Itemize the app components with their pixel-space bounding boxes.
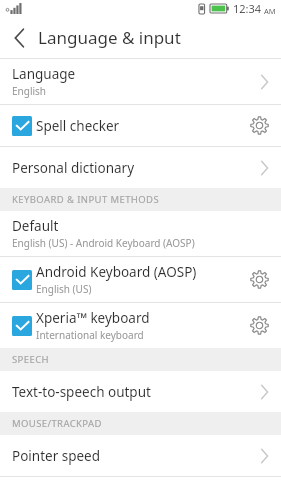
staticText: MOUSE/TRACKPAD xyxy=(12,417,102,430)
button[interactable]: Navigate up xyxy=(0,17,38,58)
staticText: Android Keyboard (AOSP) xyxy=(36,263,197,281)
button[interactable]: Personal dictionary xyxy=(0,147,281,188)
button[interactable]: Language xyxy=(0,59,281,104)
button[interactable]: Xperia keyboard settings xyxy=(237,303,281,348)
staticText: Spell checker xyxy=(36,117,120,135)
staticText: Xperia™ keyboard xyxy=(36,309,150,327)
button[interactable]: Pointer speed xyxy=(0,435,281,476)
staticText: SPEECH xyxy=(12,353,49,366)
staticText: KEYBOARD & INPUT METHODS xyxy=(12,193,160,206)
staticText: Language & input xyxy=(38,26,181,49)
button[interactable]: Default xyxy=(0,211,281,256)
staticText: 12:34 xyxy=(233,1,262,16)
staticText: International keyboard xyxy=(36,328,144,342)
staticText: Pointer speed xyxy=(12,447,101,465)
staticText: English xyxy=(12,84,47,98)
button[interactable]: Text-to-speech output xyxy=(0,371,281,412)
button[interactable]: Android Keyboard (AOSP) xyxy=(0,263,237,296)
staticText: AM xyxy=(264,6,276,16)
staticText: Language xyxy=(12,65,76,83)
staticText: Personal dictionary xyxy=(12,159,135,177)
button[interactable]: Xperia™ keyboard xyxy=(0,309,237,342)
staticText: Text-to-speech output xyxy=(12,383,151,401)
staticText: English (US) xyxy=(36,282,92,296)
button[interactable]: Android Keyboard settings xyxy=(237,257,281,302)
staticText: English (US) - Android Keyboard (AOSP) xyxy=(12,236,195,250)
button[interactable]: Spell checker settings xyxy=(237,105,281,146)
button[interactable]: Spell checker xyxy=(0,116,237,136)
staticText: Default xyxy=(12,217,59,235)
